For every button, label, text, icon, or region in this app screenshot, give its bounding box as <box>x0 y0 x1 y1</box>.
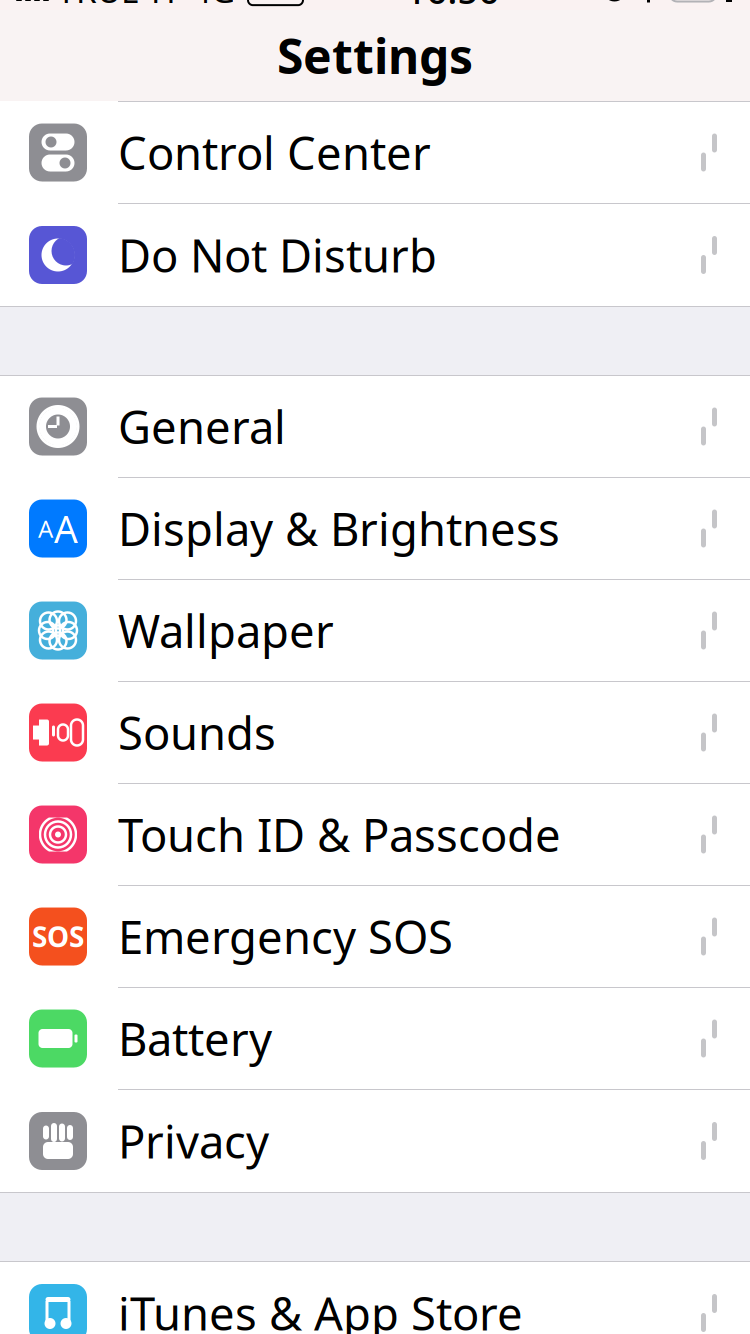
staticText: A <box>54 504 78 553</box>
staticText: SOS <box>32 918 84 955</box>
staticText: Touch ID & Passcode <box>118 804 561 865</box>
staticText: Emergency SOS <box>118 906 453 967</box>
button[interactable]: Control Center <box>0 102 750 204</box>
button[interactable]: Privacy <box>0 1090 750 1192</box>
staticText: TRUE-H <box>57 0 176 12</box>
staticText: 4G <box>192 0 235 12</box>
button[interactable]: Battery <box>0 988 750 1090</box>
staticText: Sounds <box>118 702 276 763</box>
button[interactable]: Do Not Disturb <box>0 204 750 306</box>
staticText: Battery <box>118 1008 272 1069</box>
staticText: Settings <box>277 24 473 87</box>
button[interactable]: Touch ID & Passcode <box>0 784 750 886</box>
button[interactable]: Sounds <box>0 682 750 784</box>
staticText: Wallpaper <box>118 600 334 661</box>
staticText: General <box>118 396 286 457</box>
button[interactable]: SOS <box>0 886 750 988</box>
staticText: Control Center <box>118 122 431 183</box>
staticText: iTunes & App Store <box>118 1283 523 1334</box>
button[interactable]: General <box>0 376 750 478</box>
button[interactable]: iTunes & App Store <box>0 1262 750 1334</box>
staticText: A <box>38 513 53 544</box>
staticText: Do Not Disturb <box>118 225 437 285</box>
button[interactable]: Wallpaper <box>0 580 750 682</box>
staticText: Display & Brightness <box>118 498 560 559</box>
button[interactable]: A <box>0 478 750 580</box>
staticText: 16:56 <box>405 0 499 14</box>
staticText: Privacy <box>118 1111 269 1171</box>
